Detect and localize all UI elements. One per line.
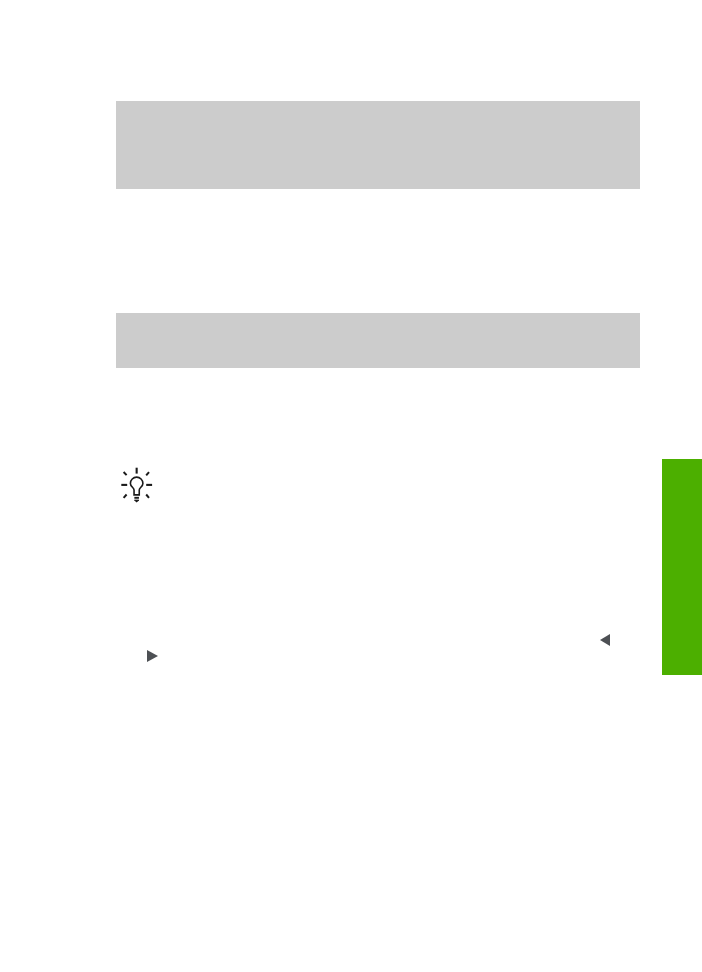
- button[interactable]: Previous: [600, 634, 610, 646]
- button[interactable]: Play: [147, 650, 158, 662]
- button[interactable]: Tip: [118, 462, 158, 506]
